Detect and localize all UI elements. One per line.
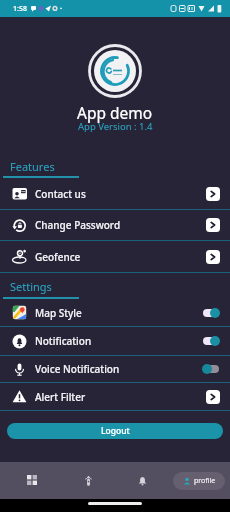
button[interactable]: Alert Filter: [0, 383, 230, 410]
staticText: profile: [194, 476, 216, 486]
button[interactable]: Geofence: [0, 241, 230, 272]
button[interactable]: Logout: [7, 423, 223, 439]
staticText: Change Password: [35, 218, 121, 232]
button[interactable]: Notification: [0, 327, 230, 355]
button[interactable]: Map Style: [0, 299, 230, 326]
button[interactable]: [24, 472, 40, 488]
button[interactable]: [206, 187, 220, 201]
button[interactable]: Voice Notification: [0, 356, 230, 382]
button[interactable]: Change Password: [0, 210, 230, 240]
button[interactable]: profile: [173, 472, 225, 490]
button[interactable]: [202, 364, 220, 374]
staticText: Settings: [10, 279, 52, 294]
button[interactable]: Contact us: [0, 178, 230, 209]
button[interactable]: [80, 472, 96, 488]
staticText: Map Style: [35, 306, 82, 320]
staticText: App Version : 1.4: [78, 120, 153, 133]
button[interactable]: [206, 250, 220, 264]
button[interactable]: [206, 218, 220, 232]
staticText: Logout: [101, 425, 130, 437]
staticText: Geofence: [35, 250, 81, 264]
button[interactable]: [206, 390, 220, 404]
staticText: 1:58: [13, 4, 27, 14]
staticText: Alert Filter: [35, 390, 86, 404]
staticText: App demo: [77, 102, 153, 123]
staticText: Voice Notification: [35, 362, 120, 376]
button[interactable]: [202, 308, 220, 318]
staticText: Notification: [35, 334, 92, 348]
staticText: Features: [10, 159, 55, 174]
button[interactable]: [202, 336, 220, 346]
staticText: Contact us: [35, 187, 86, 201]
button[interactable]: [134, 472, 150, 488]
